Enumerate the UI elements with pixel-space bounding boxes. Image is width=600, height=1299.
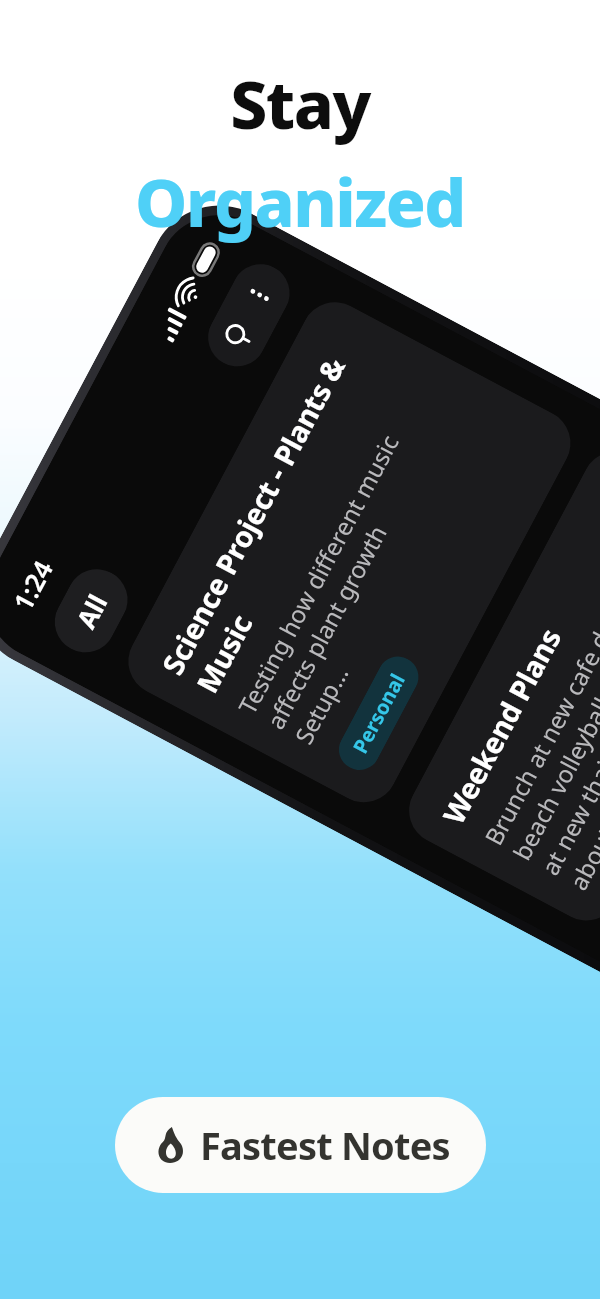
staticText: Brunch at new cafe downtown, beach volle… — [476, 499, 600, 896]
staticText: Fastest Notes — [200, 1119, 450, 1171]
staticText: Testing how different music affects plan… — [230, 368, 494, 750]
button[interactable]: All — [44, 558, 138, 663]
button[interactable]: Science Project - Plants & Music — [116, 290, 582, 814]
button[interactable]: More options — [229, 264, 291, 326]
button[interactable]: Search — [207, 304, 269, 367]
staticText: Organized — [135, 156, 465, 246]
staticText: Stay — [230, 58, 370, 148]
staticText: Weekend Plans — [433, 621, 569, 830]
button[interactable]: Fastest Notes — [115, 1097, 486, 1193]
staticText: All — [68, 588, 115, 634]
button[interactable]: Personal — [332, 649, 426, 777]
staticText: Personal — [346, 669, 411, 758]
staticText: 1:24 — [5, 554, 60, 616]
staticText: Science Project - Plants & Music — [152, 327, 400, 699]
button[interactable]: Weekend Plans — [397, 439, 600, 932]
